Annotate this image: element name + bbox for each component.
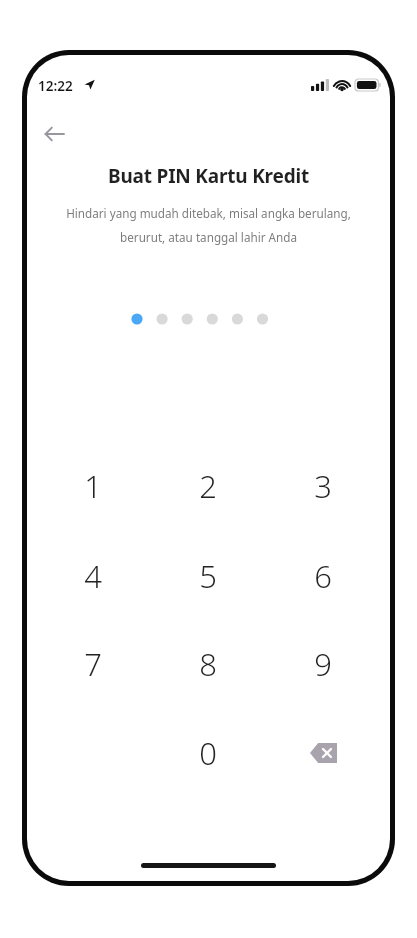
staticText: 2 <box>199 465 217 507</box>
button[interactable]: 9 <box>277 623 369 705</box>
staticText: Hindari yang mudah ditebak, misal angka … <box>55 205 362 245</box>
button[interactable]: Back <box>34 114 74 154</box>
button[interactable]: 7 <box>47 623 139 705</box>
staticText: 12:22 <box>38 77 73 94</box>
staticText: 1 <box>84 465 102 507</box>
staticText: Buat PIN Kartu Kredit <box>108 163 309 189</box>
staticText: 0 <box>199 732 217 774</box>
staticText: 9 <box>314 643 332 685</box>
button[interactable]: 3 <box>277 445 369 527</box>
button[interactable]: 2 <box>162 445 254 527</box>
staticText: 8 <box>199 643 217 685</box>
button[interactable]: 6 <box>277 535 369 617</box>
button[interactable]: 5 <box>162 535 254 617</box>
staticText: 5 <box>199 555 217 597</box>
button[interactable]: 1 <box>47 445 139 527</box>
button[interactable]: 4 <box>47 535 139 617</box>
button[interactable]: 8 <box>162 623 254 705</box>
button[interactable]: 0 <box>162 712 254 794</box>
staticText: 7 <box>84 643 102 685</box>
staticText: 4 <box>84 555 102 597</box>
button[interactable]: Delete <box>277 712 369 794</box>
staticText: 6 <box>314 555 332 597</box>
staticText: 3 <box>314 465 332 507</box>
